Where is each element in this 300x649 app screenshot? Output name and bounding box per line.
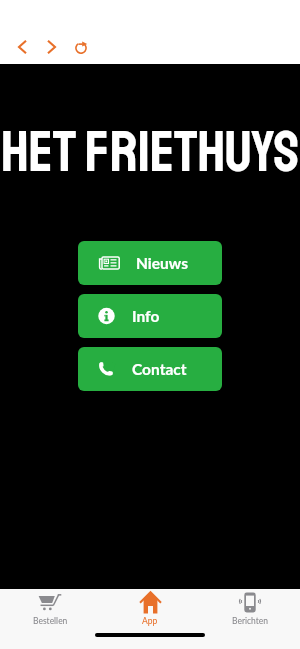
button[interactable]: App [100,591,200,626]
staticText: HET FRIETHUYS [0,116,300,189]
staticText: Berichten [232,616,269,626]
button[interactable]: Contact [78,347,222,391]
staticText: Nieuws [136,254,188,273]
button[interactable]: Back [7,32,37,62]
staticText: App [142,616,158,626]
button[interactable]: Reload [67,32,97,62]
staticText: Info [132,307,160,326]
button[interactable]: Info [78,294,222,338]
staticText: Bestellen [33,616,68,626]
button[interactable]: Nieuws [78,241,222,285]
button[interactable]: Bestellen [0,591,100,626]
staticText: Contact [132,360,187,379]
button[interactable]: Berichten [200,591,300,626]
button[interactable]: Forward [37,32,67,62]
